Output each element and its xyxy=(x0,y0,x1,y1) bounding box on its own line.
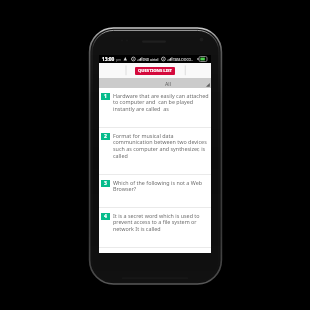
button[interactable]: 4 xyxy=(99,208,211,247)
staticText: QUESTIONS LIST xyxy=(138,68,172,74)
button[interactable]: 1 xyxy=(99,88,211,127)
staticText: Format for musical data communication be… xyxy=(113,132,210,160)
staticText: 3 xyxy=(104,180,107,187)
button[interactable]: 3 xyxy=(99,175,211,207)
staticText: pm xyxy=(116,57,122,62)
staticText: 13:00 xyxy=(102,56,115,63)
staticText: Hardware that are easily can attached to… xyxy=(113,92,210,113)
staticText: All xyxy=(165,80,171,87)
staticText: 4 xyxy=(104,213,107,220)
staticText: TATA DOCO.. xyxy=(173,57,193,62)
staticText: IND airtel xyxy=(143,57,159,62)
button[interactable]: QUESTIONS LIST xyxy=(135,67,175,75)
staticText: 2 xyxy=(104,133,107,140)
staticText: It is a secret word which is used to pre… xyxy=(113,212,210,233)
button[interactable]: All xyxy=(99,78,211,88)
button[interactable]: 2 xyxy=(99,128,211,174)
staticText: 1 xyxy=(104,93,107,100)
staticText: Which of the following is not a Web Brow… xyxy=(113,179,210,193)
